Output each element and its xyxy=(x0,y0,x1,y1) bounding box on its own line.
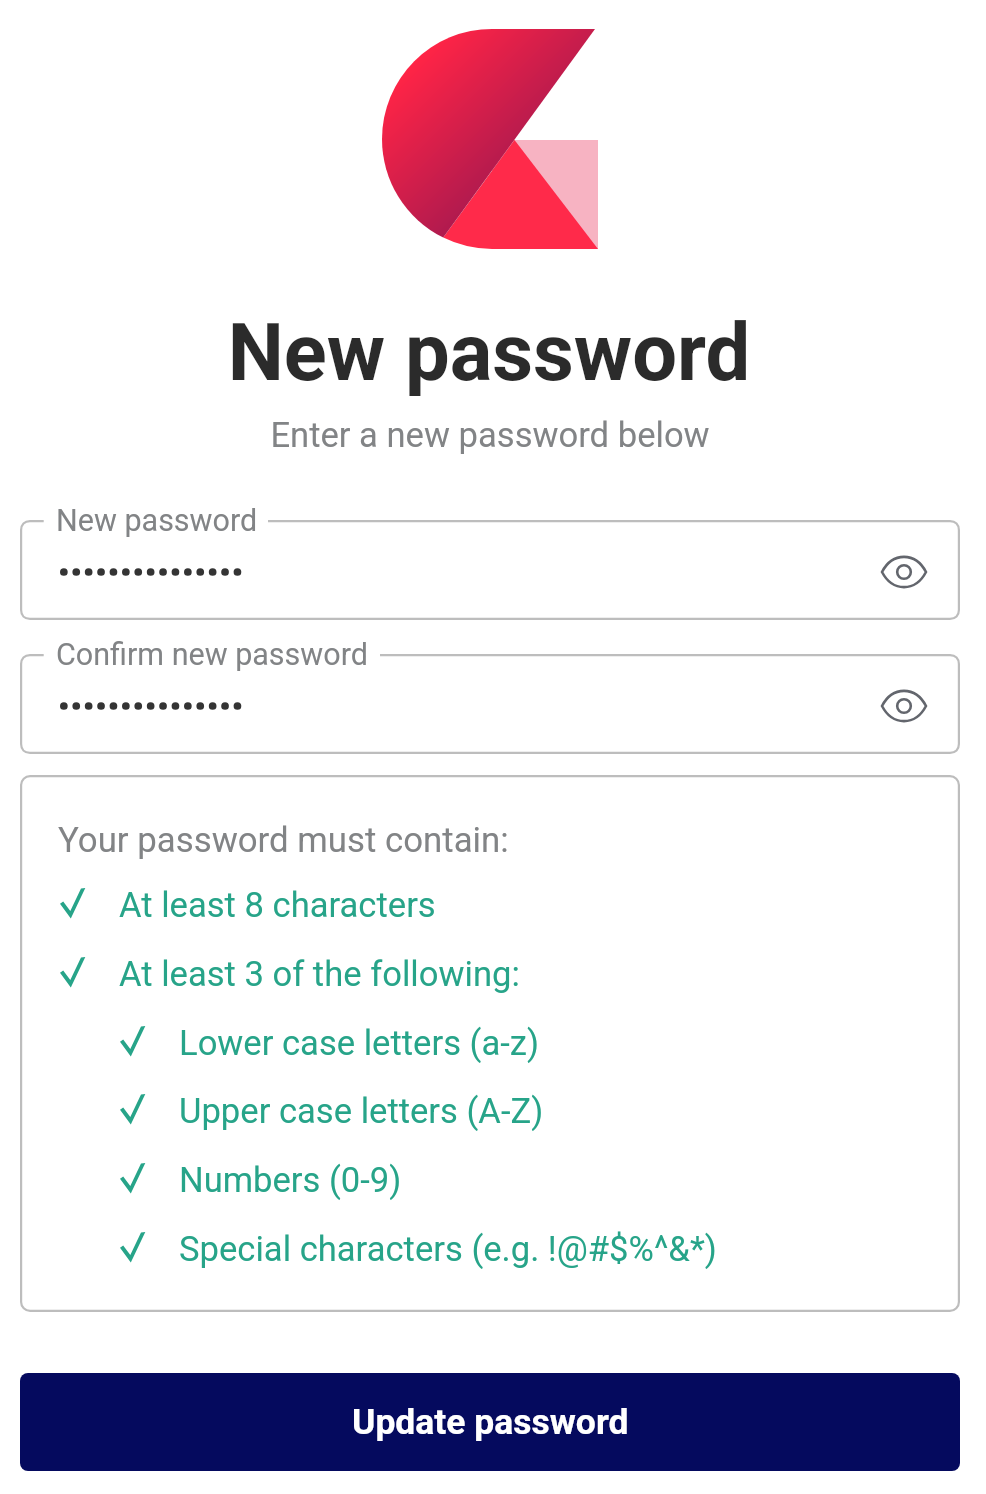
staticText: Confirm new password xyxy=(56,637,368,673)
staticText: Lower case letters (a-z) xyxy=(179,1023,540,1064)
staticText: Your password must contain: xyxy=(58,820,509,861)
staticText: New password xyxy=(56,503,258,539)
staticText: Numbers (0-9) xyxy=(179,1160,402,1201)
button[interactable]: Show password xyxy=(874,542,934,602)
staticText: Special characters (e.g. !@#$%^&*) xyxy=(179,1229,717,1270)
staticText: New password xyxy=(0,306,982,399)
staticText: Enter a new password below xyxy=(0,415,983,456)
staticText: At least 3 of the following: xyxy=(119,954,520,995)
staticText: At least 8 characters xyxy=(119,885,436,926)
button[interactable]: Show password xyxy=(874,676,934,736)
staticText: Upper case letters (A-Z) xyxy=(179,1091,544,1132)
staticText: Update password xyxy=(352,1401,629,1443)
button[interactable]: Update password xyxy=(20,1373,960,1471)
